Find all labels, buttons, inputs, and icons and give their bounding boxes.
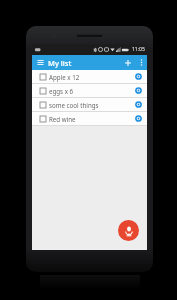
button[interactable]: Navigation menu: [32, 55, 48, 70]
staticText: Apple x 12: [49, 73, 132, 81]
staticText: some cool things: [49, 101, 132, 109]
staticText: Red wine: [49, 115, 132, 123]
button[interactable]: Apple x 12: [32, 70, 147, 83]
button[interactable]: some cool things: [32, 98, 147, 111]
button[interactable]: Item action: [132, 98, 145, 111]
button[interactable]: Add item: [120, 55, 135, 70]
button[interactable]: Red wine: [32, 112, 147, 125]
button[interactable]: Item action: [132, 84, 145, 97]
button[interactable]: Item action: [132, 70, 145, 83]
button[interactable]: eggs x 6: [32, 84, 147, 97]
staticText: eggs x 6: [49, 87, 132, 95]
button[interactable]: More options: [135, 55, 147, 70]
button[interactable]: Voice input: [118, 220, 139, 241]
staticText: 11:05: [132, 46, 145, 53]
staticText: My list: [48, 58, 120, 68]
button[interactable]: Item action: [132, 112, 145, 125]
